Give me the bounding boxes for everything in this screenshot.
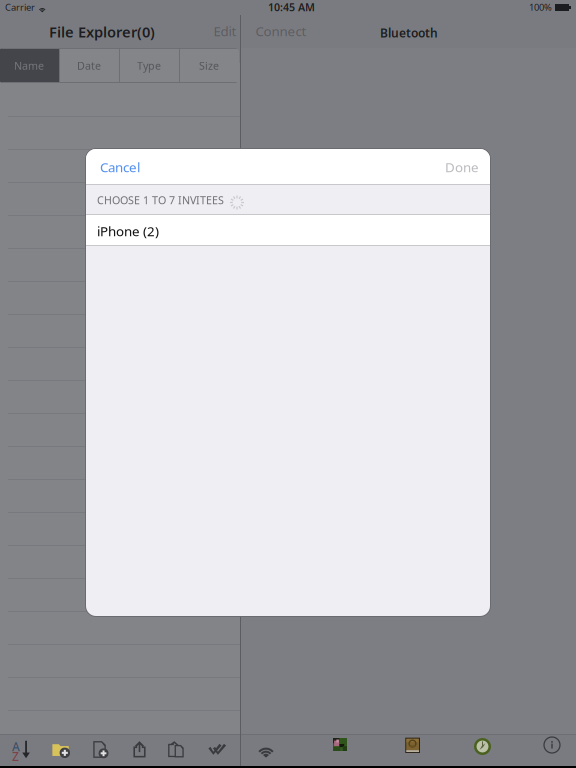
staticText: Type: [137, 58, 161, 73]
button[interactable]: Name: [0, 48, 59, 83]
staticText: Edit: [213, 22, 236, 40]
button[interactable]: New folder: [52, 740, 71, 759]
button[interactable]: Share: [130, 740, 149, 759]
button[interactable]: Select all: [208, 740, 227, 759]
staticText: Bluetooth: [380, 25, 438, 41]
staticText: iPhone (2): [97, 222, 159, 240]
staticText: Z: [12, 748, 19, 764]
button[interactable]: Photos: [333, 738, 347, 751]
staticText: Name: [14, 58, 44, 73]
staticText: 10:45 AM: [268, 0, 315, 14]
staticText: Date: [77, 58, 101, 73]
staticText: 100%: [529, 1, 552, 13]
button[interactable]: Info: [544, 737, 560, 753]
button[interactable]: Paste: [167, 740, 186, 759]
button[interactable]: Edit: [210, 23, 240, 39]
staticText: Done: [445, 158, 479, 176]
button[interactable]: Contacts: [404, 737, 420, 753]
staticText: File Explorer(0): [49, 22, 155, 41]
button[interactable]: iPhone (2): [97, 223, 479, 239]
staticText: Carrier: [5, 1, 35, 13]
staticText: Cancel: [100, 158, 140, 176]
staticText: Size: [199, 58, 219, 73]
button[interactable]: Cancel: [99, 160, 141, 174]
button[interactable]: Wi-Fi: [256, 738, 276, 758]
button[interactable]: Browser: [474, 738, 491, 755]
staticText: A: [12, 739, 20, 755]
button[interactable]: Connect: [256, 25, 306, 37]
staticText: Connect: [255, 22, 306, 40]
button[interactable]: New file: [91, 740, 110, 759]
button[interactable]: Size: [179, 48, 239, 83]
button[interactable]: Date: [59, 48, 119, 83]
staticText: CHOOSE 1 TO 7 INVITEES: [97, 193, 224, 207]
button[interactable]: Sort: [12, 740, 31, 759]
button[interactable]: Done: [444, 160, 480, 174]
button[interactable]: Type: [119, 48, 179, 83]
